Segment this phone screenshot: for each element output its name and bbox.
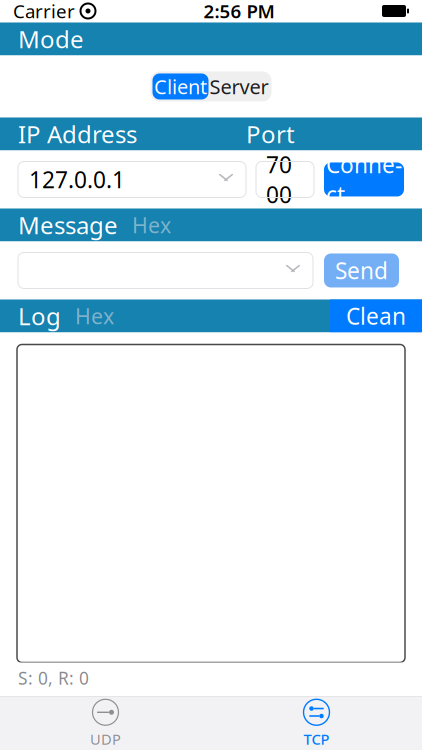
button[interactable]: Server	[208, 73, 269, 99]
staticText: S: 0, R: 0	[18, 666, 89, 689]
staticText: Message	[18, 209, 118, 241]
staticText: TCP	[303, 729, 329, 749]
staticText: Send	[335, 255, 388, 285]
staticText: Mode	[18, 23, 84, 55]
staticText: Carrier	[13, 0, 75, 23]
button[interactable]: 7000	[256, 161, 314, 197]
staticText: Connect	[326, 149, 402, 210]
staticText: 127.0.0.1	[29, 164, 125, 194]
button[interactable]: Connect	[324, 162, 404, 196]
staticText: Log	[18, 300, 61, 332]
button[interactable]: Send	[324, 253, 399, 287]
staticText: IP Address	[18, 118, 137, 150]
button[interactable]: Client	[152, 73, 208, 99]
button[interactable]: Clean	[330, 299, 422, 332]
button[interactable]: UDP	[0, 699, 211, 748]
staticText: Hex	[75, 302, 114, 330]
staticText: 7000	[266, 149, 292, 210]
staticText: 2:56 PM	[203, 0, 274, 23]
staticText: Hex	[132, 211, 171, 239]
button[interactable]	[18, 252, 313, 288]
staticText: Clean	[346, 301, 406, 331]
staticText: Port	[246, 118, 295, 150]
button[interactable]: TCP	[211, 699, 422, 748]
button[interactable]: 127.0.0.1	[18, 161, 246, 197]
staticText: Client	[154, 73, 207, 100]
staticText: UDP	[90, 729, 121, 749]
staticText: Server	[209, 73, 268, 100]
